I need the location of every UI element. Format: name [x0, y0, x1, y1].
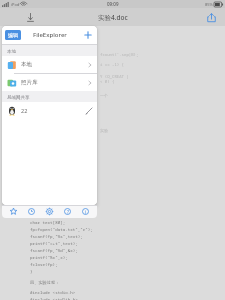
staticText: fp=fopen("data.txt","r");	[30, 227, 93, 233]
staticText: Y (O_CREAT |	[100, 74, 129, 79]
staticText: char text[80];	[30, 220, 66, 226]
staticText: #include <stdlib.h>	[30, 297, 78, 300]
staticText: printf("=+t",text);	[30, 241, 78, 247]
staticText: 22	[21, 107, 28, 114]
staticText: #include <stdio.h>	[30, 290, 76, 296]
staticText: 本地	[7, 49, 16, 55]
staticText: 09:09	[107, 1, 119, 7]
button[interactable]: Help	[61, 205, 74, 218]
staticText: 照片库	[21, 79, 38, 86]
button[interactable]: Add	[82, 29, 94, 41]
staticText: i == -1) {	[100, 62, 124, 67]
staticText: 85%	[205, 2, 213, 7]
button[interactable]: Settings	[43, 205, 56, 218]
staticText: FileExplorer	[33, 31, 67, 39]
staticText: 一个	[100, 93, 108, 98]
button[interactable]: 本地	[2, 56, 97, 73]
staticText: iPod	[11, 2, 20, 7]
staticText: 本地	[21, 61, 32, 68]
staticText: ?	[67, 209, 69, 215]
staticText: }	[30, 269, 33, 275]
staticText: 编辑	[8, 32, 18, 38]
staticText: < 0) {	[100, 79, 115, 84]
staticText: fscanf(fp,"%s",text);	[30, 234, 83, 240]
button[interactable]: Info	[79, 205, 92, 218]
button[interactable]: 22	[2, 102, 97, 119]
staticText: 实验4.doc	[98, 13, 128, 22]
staticText: i	[85, 209, 87, 215]
staticText: 四、实验过程：	[30, 280, 60, 285]
button[interactable]: 照片库	[2, 74, 97, 91]
staticText: fcount('.sep|B);	[100, 52, 139, 57]
button[interactable]: 编辑	[5, 30, 21, 40]
staticText: fclose(fp);	[30, 262, 58, 268]
staticText: printf("%x",x);	[30, 255, 68, 261]
staticText: 实验	[100, 128, 108, 133]
button[interactable]: Share	[203, 9, 219, 25]
button[interactable]: Recent	[25, 205, 38, 218]
button[interactable]: Favorites	[7, 205, 20, 218]
staticText: fscanf(fp,"%d",&x);	[30, 248, 78, 254]
staticText: 局域网共享	[7, 95, 30, 101]
button[interactable]: Download	[22, 9, 38, 25]
